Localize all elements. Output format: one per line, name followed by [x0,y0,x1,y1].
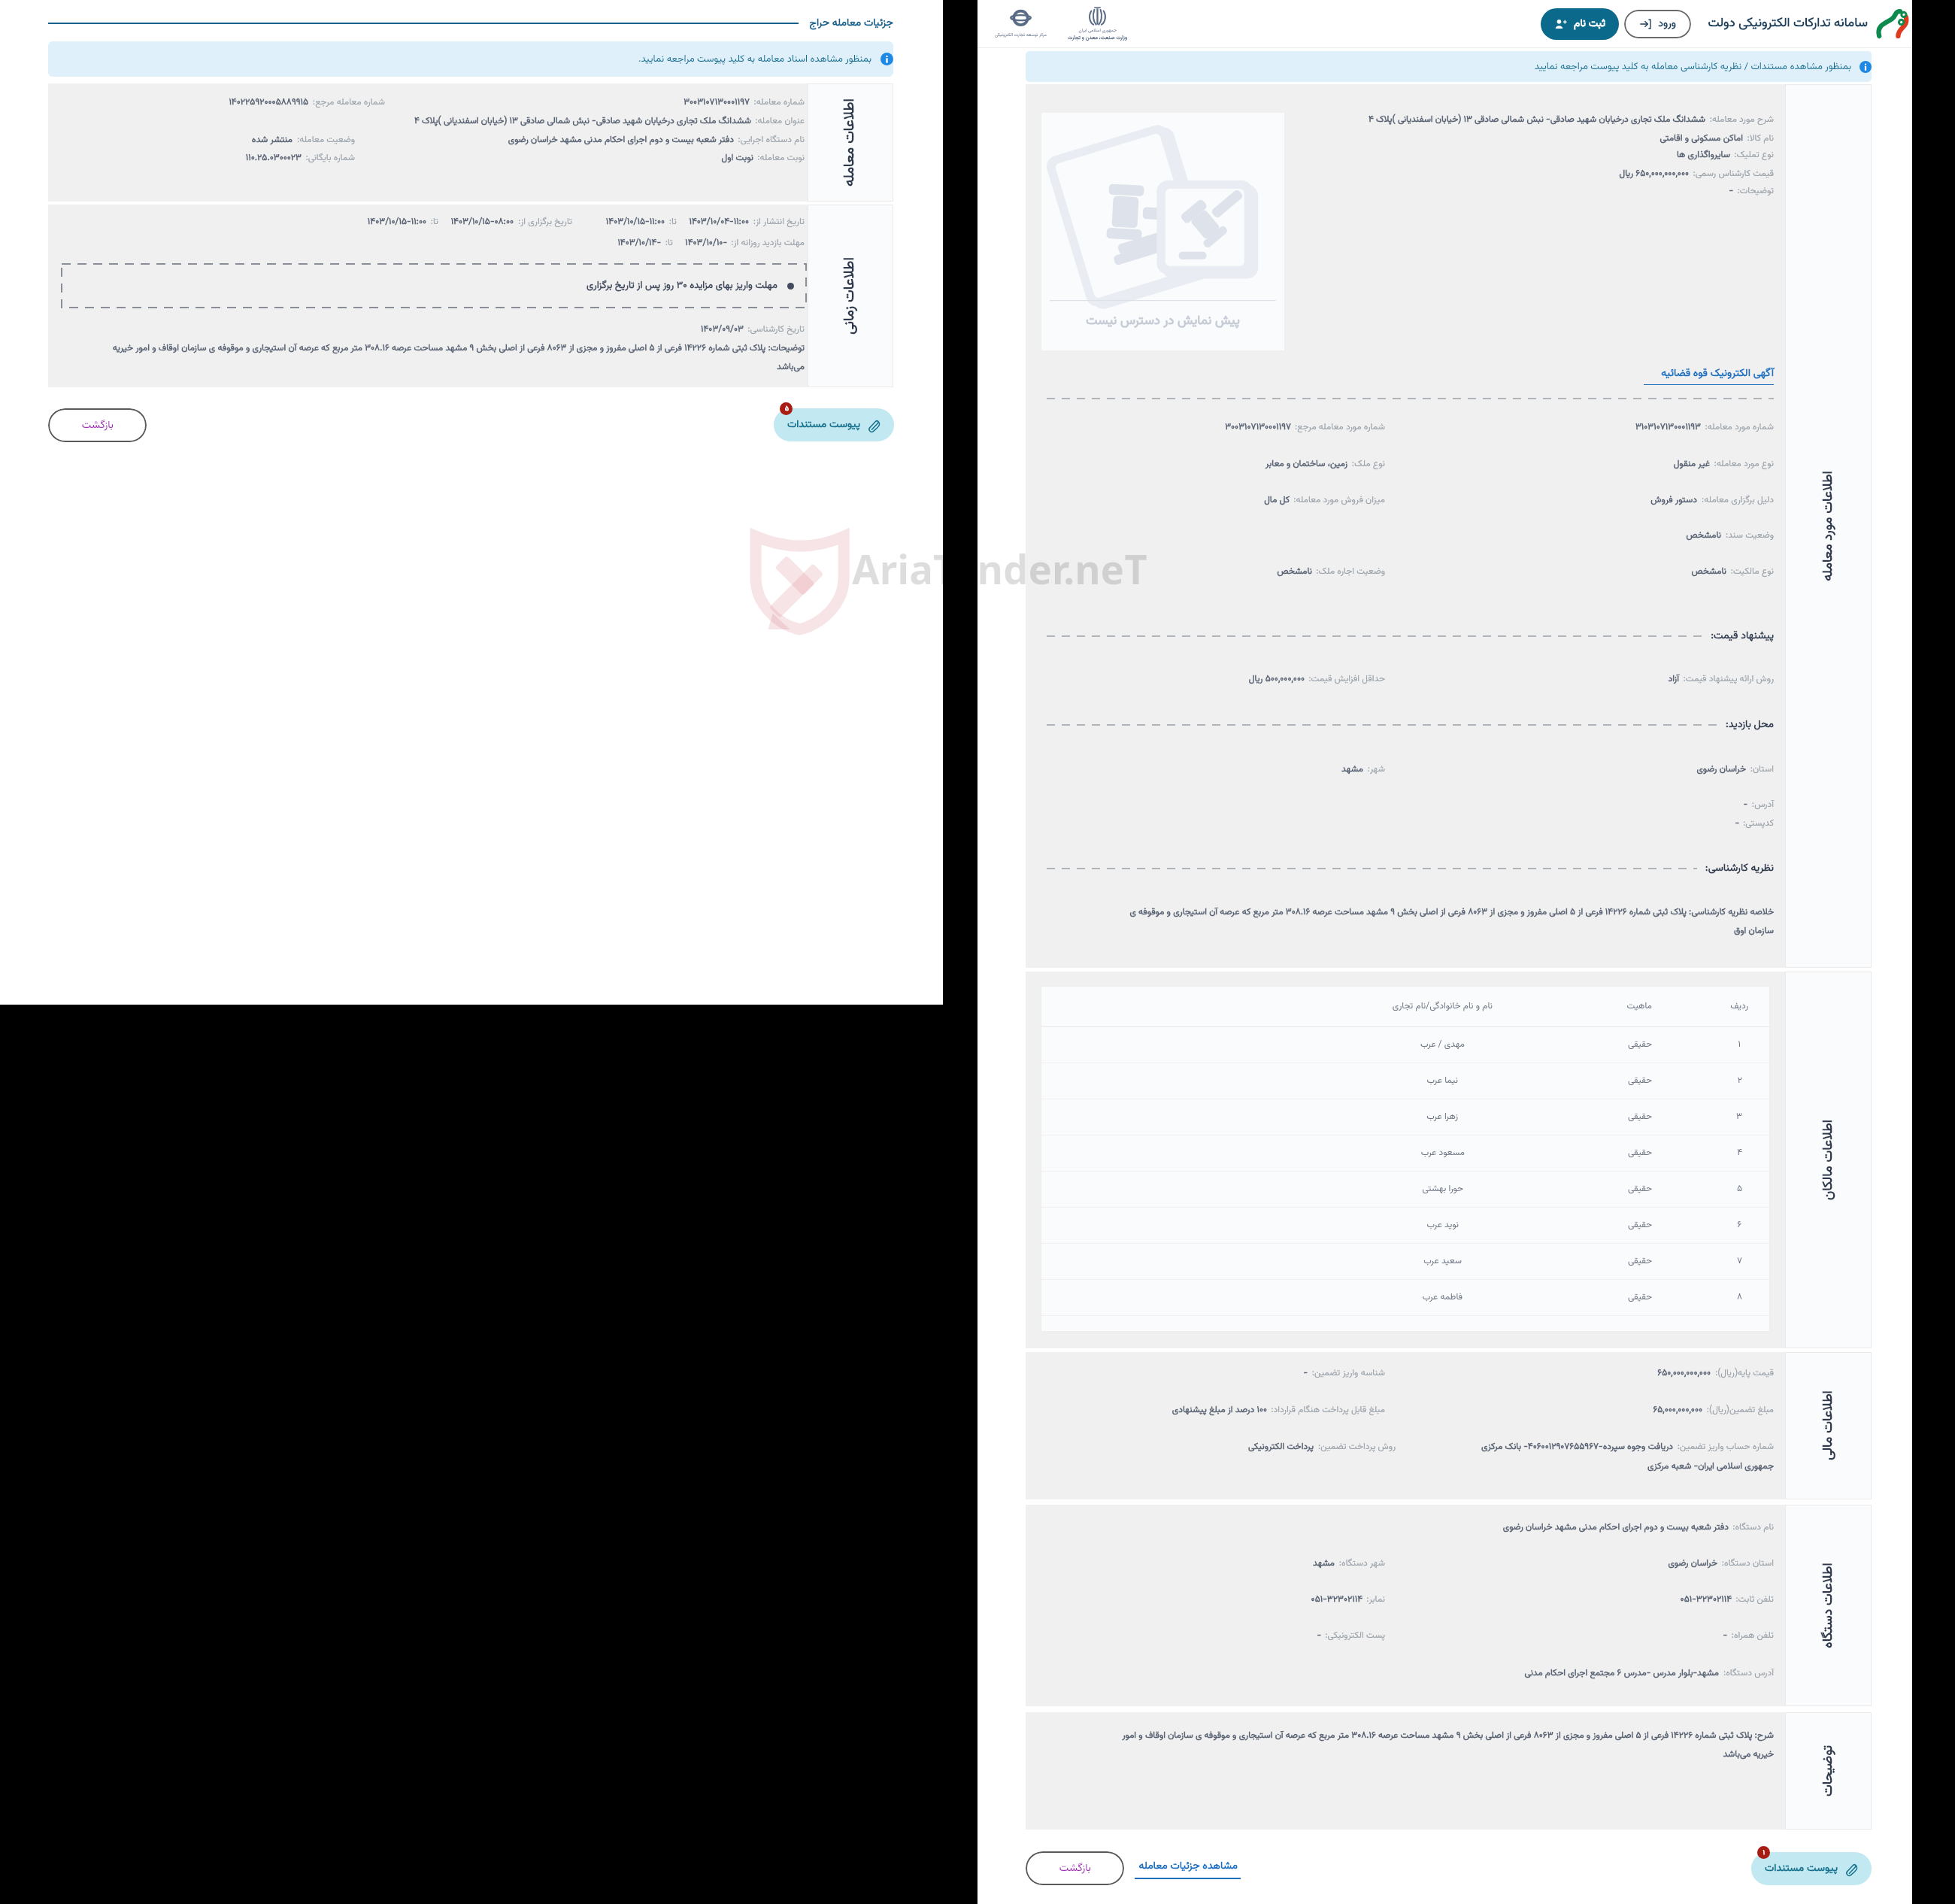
staticText: اطلاعات دستگاه [1818,1563,1839,1648]
staticText: اطلاعات معامله [839,99,862,186]
staticText: ۵ [1736,1182,1742,1196]
staticText: شماره مورد معامله: [1705,420,1774,435]
staticText: ۱ [1763,1848,1765,1858]
staticText: ۰۵۱-۳۲۳۰۲۱۱۴ [1680,1593,1732,1607]
staticText: زمین، ساختمان و معابر [1265,457,1347,471]
staticText: AriaTender.neT [852,541,1147,596]
button[interactable]: بازگشت [1026,1851,1124,1885]
staticText: دستور فروش [1650,493,1697,508]
staticText: میزان فروش مورد معامله: [1293,493,1385,508]
staticText: حقیقی [1627,1038,1652,1052]
staticText: مبلغ تضمین(ریال): [1706,1403,1774,1417]
staticText: ۷ [1736,1254,1742,1269]
staticText: اطلاعات زمانی [839,257,862,335]
staticText: شماره بایگانی: [305,151,355,165]
button[interactable]: Attachment [774,408,894,441]
staticText: حقیقی [1627,1110,1652,1124]
staticText: ۱۴۰۳/۱۰/۰۴-۱۱:۰۰ [689,215,749,229]
staticText: نوبت اول [721,151,753,165]
staticText: - [1723,1629,1727,1643]
staticText: شماره معامله مرجع: [312,96,385,110]
staticText: قیمت پایه(ریال): [1714,1366,1774,1381]
staticText: وضعیت سند: [1725,529,1774,543]
staticText: مرکز توسعه تجارت الکترونیکی [995,32,1047,38]
staticText: نامشخص [1691,565,1726,579]
staticText: تاریخ انتشار از: [753,215,805,229]
staticText: استان: [1750,763,1774,777]
staticText: نظریه کارشناسی: [1705,860,1774,877]
staticText: نوع تملیک: [1734,148,1774,162]
staticText: ششدانگ ملک تجاری درخیابان شهید صادقی- نب… [414,114,751,129]
staticText: شهر: [1367,763,1385,777]
staticText: شناسه واریز تضمین: [1311,1366,1385,1381]
staticText: - [1303,1366,1308,1381]
staticText: آدرس دستگاه: [1723,1666,1774,1681]
button[interactable]: ورود [1624,10,1691,38]
staticText: ۴ [1737,1146,1742,1160]
staticText: حقیقی [1627,1290,1652,1305]
staticText: تا: [668,215,677,229]
staticText: نام دستگاه: [1732,1520,1774,1535]
staticText: آگهی الکترونیک قوه قضائیه [1661,365,1774,382]
staticText: نامشخص [1686,529,1721,543]
staticText: حقیقی [1627,1218,1652,1232]
staticText: -۱۴۰۳/۱۰/۱۰ [685,236,727,250]
staticText: نیما عرب [1426,1074,1458,1088]
button[interactable]: Attachment [1751,1852,1872,1885]
staticText: محل بازدید: [1726,717,1774,733]
staticText: حقیقی [1627,1254,1652,1269]
staticText: خراسان رضوی [1696,763,1746,777]
staticText: جزئیات معامله حراج [809,15,893,32]
staticText: شهر دستگاه: [1338,1557,1385,1571]
staticText: تاریخ کارشناسی: [747,323,805,337]
staticText: ششدانگ ملک تجاری درخیابان شهید صادقی- نب… [1368,113,1705,127]
staticText: مهدی / عرب [1420,1038,1465,1052]
staticText: حقیقی [1627,1074,1652,1088]
staticText: استان دستگاه: [1721,1557,1774,1571]
staticText: غیر منقول [1673,457,1710,471]
button[interactable]: مشاهده جزئیات معامله [1135,1858,1241,1879]
staticText: شماره معامله: [753,96,805,110]
staticText: نام کالا: [1747,132,1774,146]
staticText: دریافت وجوه سپرده-۴۰۶۰۰۱۲۹۰۷۶۵۵۹۶۷- بانک… [1481,1440,1673,1454]
staticText: ۱۰۰ درصد از مبلغ پیشنهادی [1171,1403,1267,1417]
staticText: توضیحات: پلاک ثبتی شماره ۱۴۲۲۶ فرعی از ۵… [93,341,805,374]
staticText: ورود [1658,16,1676,32]
staticText: آدرس: [1751,798,1774,812]
other: Setad logo [1876,8,1908,40]
staticText: شرح: پلاک ثبتی شماره ۱۴۲۲۶ فرعی از ۵ اصل… [1108,1729,1774,1761]
other: Attachment [1844,1862,1859,1876]
staticText: خراسان رضوی [1668,1557,1717,1571]
staticText: اماکن مسکونی و اقامتی [1659,132,1743,146]
staticText: ۳ [1736,1110,1742,1124]
staticText: عنوان معامله: [755,114,805,129]
staticText: ۵ [784,404,789,414]
staticText: نوع ملک: [1351,457,1385,471]
staticText: تلفن ثابت: [1735,1593,1774,1607]
staticText: بمنظور مشاهده اسناد معامله به کلید پیوست… [638,52,871,67]
staticText: روش پرداخت تضمین: [1317,1440,1396,1454]
staticText: تاریخ برگزاری از: [517,215,572,229]
staticText: ۳۱۰۳۱۰۷۱۳۰۰۰۱۱۹۳ [1635,420,1701,435]
staticText: ۲ [1737,1074,1742,1088]
staticText: نوبت معامله: [757,151,805,165]
staticText: جمهوری اسلامی ایران- شعبه مرکزی [1647,1460,1774,1474]
staticText: پیوست مستندات [787,417,860,433]
staticText: دفتر شعبه بیست و دوم اجرای احکام مدنی مش… [1502,1520,1729,1535]
button[interactable]: بازگشت [48,408,147,442]
staticText: اطلاعات مورد معامله [1818,471,1839,581]
staticText: حورا بهشتی [1422,1182,1463,1196]
staticText: ۱۴۰۳/۰۹/۰۳ [701,323,744,337]
staticText: توضیحات [1818,1745,1839,1796]
staticText: روش ارائه پیشنهاد قیمت: [1683,672,1774,687]
button[interactable]: ثبت نام [1541,8,1619,40]
other: Login [1639,18,1651,30]
staticText: توضیحات: [1737,184,1774,199]
staticText: خلاصه نظریه کارشناسی: پلاک ثبتی شماره ۱۴… [1108,905,1774,938]
staticText: ۱۴۰۲۲۵۹۲۰۰۰۵۸۸۹۹۱۵ [229,96,308,110]
staticText: نمابر: [1366,1593,1385,1607]
button[interactable]: آگهی الکترونیک قوه قضائیه [1644,365,1774,385]
staticText: جمهوری اسلامی ایران [1078,27,1117,34]
staticText: کل مال [1264,493,1290,508]
staticText: ۵۰۰,۰۰۰,۰۰۰ ریال [1248,672,1305,687]
